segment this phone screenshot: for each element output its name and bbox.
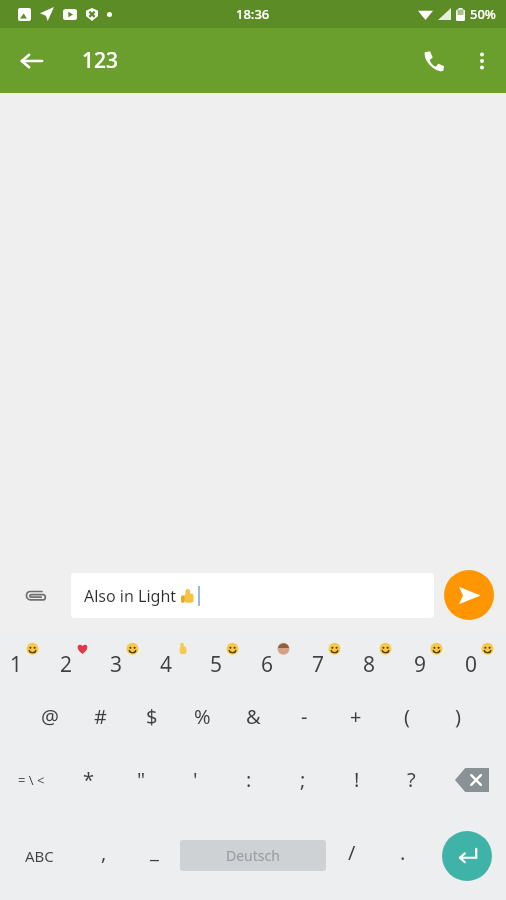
button[interactable]: 4	[150, 630, 200, 685]
staticText: $	[146, 703, 158, 730]
button[interactable]: Also in Light	[71, 573, 434, 618]
button[interactable]: @	[24, 685, 75, 748]
staticText: 9	[414, 650, 427, 679]
staticText: +	[350, 703, 362, 730]
staticText: _	[150, 837, 159, 864]
button[interactable]: (	[381, 685, 432, 748]
button[interactable]: 5	[200, 630, 251, 685]
staticText: "	[137, 766, 146, 793]
staticText: 6	[261, 650, 274, 679]
staticText: ,	[101, 839, 107, 866]
button[interactable]: $	[126, 685, 177, 748]
staticText: '	[193, 766, 198, 793]
staticText: (	[404, 703, 410, 730]
button[interactable]: Call	[410, 37, 458, 85]
button[interactable]: More options	[458, 37, 506, 85]
staticText: #	[94, 703, 107, 730]
button[interactable]: .	[377, 811, 428, 900]
staticText: ABC	[25, 846, 54, 866]
staticText: 1	[10, 650, 23, 679]
staticText: *	[83, 766, 95, 793]
button[interactable]: 1	[0, 630, 50, 685]
staticText: @	[41, 703, 59, 730]
staticText: .	[400, 839, 406, 866]
button[interactable]: 3	[100, 630, 150, 685]
button[interactable]: '	[168, 748, 222, 811]
button[interactable]: 7	[302, 630, 353, 685]
button[interactable]: Backspace	[438, 748, 506, 811]
staticText: %	[194, 703, 211, 730]
staticText: :	[246, 766, 252, 793]
staticText: ;	[300, 766, 306, 793]
button[interactable]: Back	[8, 37, 56, 85]
button[interactable]: Attach	[14, 574, 56, 616]
staticText: 50%	[470, 5, 496, 23]
staticText: &	[246, 703, 261, 730]
button[interactable]: = \ <	[0, 748, 62, 811]
staticText: -	[301, 703, 308, 730]
button[interactable]: 0	[455, 630, 506, 685]
staticText: /	[348, 839, 356, 866]
button[interactable]: ,	[78, 811, 129, 900]
button[interactable]: 9	[404, 630, 455, 685]
staticText: )	[455, 703, 461, 730]
staticText: ?	[407, 766, 416, 793]
button[interactable]: /	[326, 811, 377, 900]
staticText: 0	[465, 650, 478, 679]
button[interactable]: #	[75, 685, 126, 748]
button[interactable]: %	[177, 685, 228, 748]
button[interactable]: )	[432, 685, 483, 748]
button[interactable]: ?	[384, 748, 438, 811]
staticText: !	[354, 766, 360, 793]
button[interactable]: ;	[276, 748, 330, 811]
button[interactable]: Deutsch	[180, 840, 326, 871]
staticText: 2	[60, 650, 73, 679]
button[interactable]: _	[129, 811, 180, 900]
button[interactable]: 6	[251, 630, 302, 685]
staticText: 4	[160, 650, 173, 679]
button[interactable]: "	[115, 748, 168, 811]
button[interactable]: Enter	[442, 831, 492, 881]
staticText: 5	[210, 650, 223, 679]
button[interactable]: 2	[50, 630, 100, 685]
button[interactable]: !	[330, 748, 384, 811]
staticText: 7	[312, 650, 325, 679]
button[interactable]: *	[62, 748, 115, 811]
button[interactable]: &	[228, 685, 279, 748]
button[interactable]: ABC	[0, 811, 78, 900]
button[interactable]: :	[222, 748, 276, 811]
staticText: = \ <	[18, 771, 45, 789]
staticText: 8	[363, 650, 376, 679]
button[interactable]: +	[330, 685, 381, 748]
staticText: 18:36	[236, 5, 270, 23]
staticText: 3	[110, 650, 123, 679]
staticText: Also in Light	[84, 585, 181, 607]
button[interactable]: 8	[353, 630, 404, 685]
button[interactable]: Send	[444, 570, 494, 620]
staticText: 123	[82, 46, 119, 75]
button[interactable]: -	[279, 685, 330, 748]
staticText: Deutsch	[226, 846, 280, 865]
